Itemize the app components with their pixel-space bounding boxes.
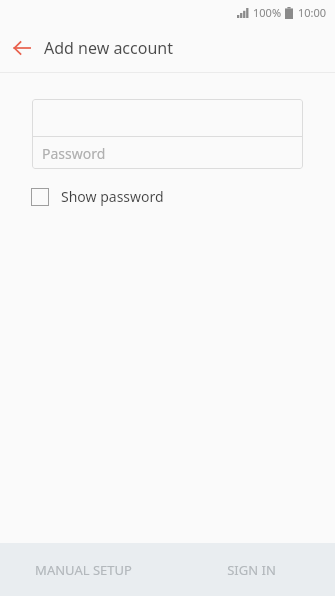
button[interactable]: Password — [32, 137, 303, 169]
button[interactable]: Back — [0, 26, 44, 70]
button[interactable]: MANUAL SETUP — [0, 543, 167, 596]
button[interactable] — [32, 99, 303, 136]
staticText: SIGN IN — [227, 561, 276, 579]
staticText: 10:00 — [298, 5, 327, 20]
button[interactable]: Show password — [26, 181, 176, 212]
staticText: Password — [42, 144, 106, 163]
staticText: MANUAL SETUP — [35, 561, 132, 579]
button[interactable]: SIGN IN — [167, 543, 335, 596]
staticText: 100% — [253, 5, 282, 20]
staticText: Show password — [61, 187, 164, 206]
staticText: Add new account — [44, 37, 173, 59]
